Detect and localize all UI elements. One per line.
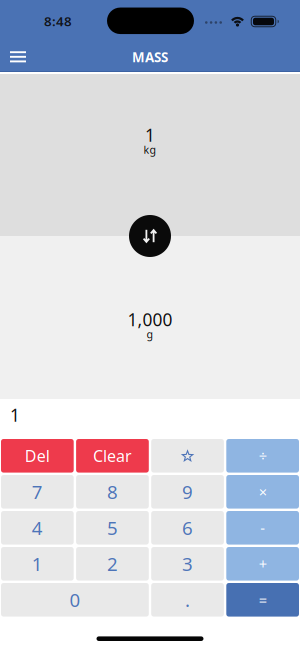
button[interactable]: Del — [1, 439, 74, 473]
staticText: 7 — [32, 479, 43, 504]
button[interactable]: 7 — [1, 475, 74, 509]
button[interactable]: 9 — [151, 475, 224, 509]
button[interactable]: × — [226, 475, 299, 509]
button[interactable]: ÷ — [226, 439, 299, 473]
staticText: 9 — [182, 479, 193, 504]
staticText: × — [259, 482, 267, 502]
staticText: + — [259, 554, 267, 574]
button[interactable]: Swap units — [129, 215, 171, 257]
button[interactable]: Menu — [0, 41, 36, 73]
staticText: Clear — [93, 445, 132, 466]
button[interactable]: . — [151, 583, 224, 617]
staticText: - — [260, 518, 265, 538]
staticText: kg — [143, 142, 156, 157]
button[interactable]: 1 — [1, 547, 74, 581]
staticText: g — [146, 327, 153, 341]
staticText: MASS — [132, 48, 168, 66]
staticText: 2 — [107, 551, 118, 576]
staticText: 4 — [32, 515, 43, 540]
staticText: 1,000 — [127, 308, 172, 331]
button[interactable]: Clear — [76, 439, 149, 473]
button[interactable]: + — [226, 547, 299, 581]
staticText: 6 — [182, 515, 193, 540]
button[interactable]: - — [226, 511, 299, 545]
button[interactable]: 2 — [76, 547, 149, 581]
staticText: 5 — [107, 515, 118, 540]
button[interactable]: Favorite — [151, 439, 224, 473]
staticText: 1 — [32, 551, 43, 576]
button[interactable]: = — [226, 583, 299, 617]
staticText: 0 — [69, 587, 80, 612]
button[interactable]: 8 — [76, 475, 149, 509]
staticText: 1 — [10, 403, 20, 426]
staticText: Del — [25, 445, 50, 466]
button[interactable]: 0 — [1, 583, 149, 617]
button[interactable]: 5 — [76, 511, 149, 545]
staticText: 8 — [107, 479, 118, 504]
staticText: 3 — [182, 551, 193, 576]
staticText: . — [185, 587, 190, 612]
staticText: 1 — [145, 123, 155, 146]
button[interactable]: 3 — [151, 547, 224, 581]
staticText: ÷ — [259, 446, 267, 466]
staticText: 8:48 — [44, 12, 72, 30]
button[interactable]: 4 — [1, 511, 74, 545]
button[interactable]: 6 — [151, 511, 224, 545]
staticText: = — [259, 590, 267, 610]
